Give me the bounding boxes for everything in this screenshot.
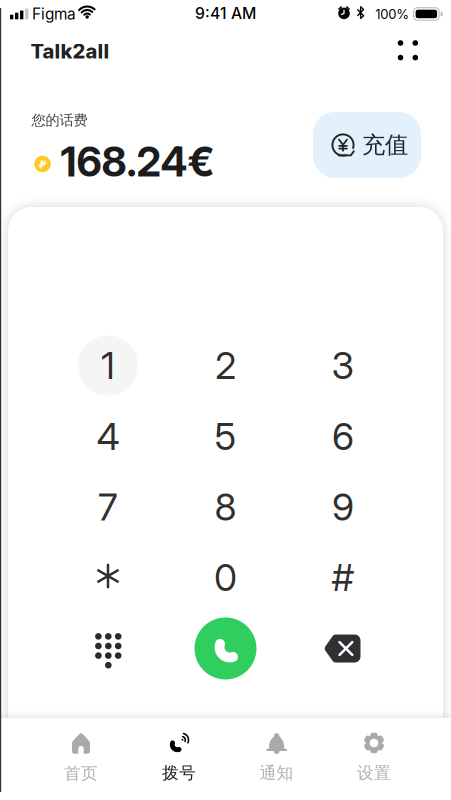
button[interactable]: Menu — [388, 30, 428, 70]
button[interactable]: 设置 — [334, 727, 414, 789]
staticText: 充值 — [362, 130, 408, 160]
button[interactable]: Delete — [313, 618, 373, 678]
button[interactable]: Call — [194, 617, 256, 679]
staticText: 7 — [98, 484, 118, 530]
button[interactable]: 首页 — [41, 727, 121, 789]
staticText: 168.24€ — [60, 137, 214, 186]
staticText: Figma — [32, 5, 76, 23]
staticText: 拨号 — [162, 762, 196, 783]
staticText: 5 — [214, 414, 236, 459]
staticText: 首页 — [64, 763, 98, 784]
staticText: # — [331, 555, 354, 600]
button[interactable]: Keypad — [78, 621, 138, 681]
button[interactable]: 8 — [185, 472, 265, 542]
button[interactable]: 0 — [185, 542, 265, 612]
button[interactable]: 1 — [68, 330, 148, 400]
staticText: 设置 — [357, 762, 391, 783]
button[interactable]: 4 — [68, 401, 148, 471]
button[interactable]: 5 — [185, 401, 265, 471]
staticText: 2 — [215, 343, 236, 388]
staticText: 4 — [96, 414, 119, 459]
button[interactable]: 6 — [303, 401, 383, 471]
button[interactable]: 拨号 — [139, 727, 219, 789]
staticText: 0 — [214, 555, 237, 600]
button[interactable] — [68, 540, 148, 610]
staticText: 3 — [331, 343, 354, 388]
staticText: 1 — [101, 343, 115, 388]
button[interactable]: 3 — [303, 330, 383, 400]
staticText: 100% — [375, 6, 409, 22]
staticText: Talk2all — [30, 39, 109, 63]
staticText: 8 — [214, 484, 236, 530]
staticText: 通知 — [259, 762, 293, 783]
button[interactable]: 2 — [185, 330, 265, 400]
button[interactable]: 7 — [68, 472, 148, 542]
staticText: 9:41 AM — [195, 4, 256, 23]
button[interactable]: # — [303, 542, 383, 612]
button[interactable]: 9 — [303, 472, 383, 542]
staticText: 9 — [332, 484, 354, 530]
button[interactable]: 通知 — [236, 727, 316, 789]
button[interactable]: 充值 — [313, 112, 421, 178]
staticText: 6 — [332, 414, 354, 459]
staticText: 您的话费 — [31, 111, 87, 129]
